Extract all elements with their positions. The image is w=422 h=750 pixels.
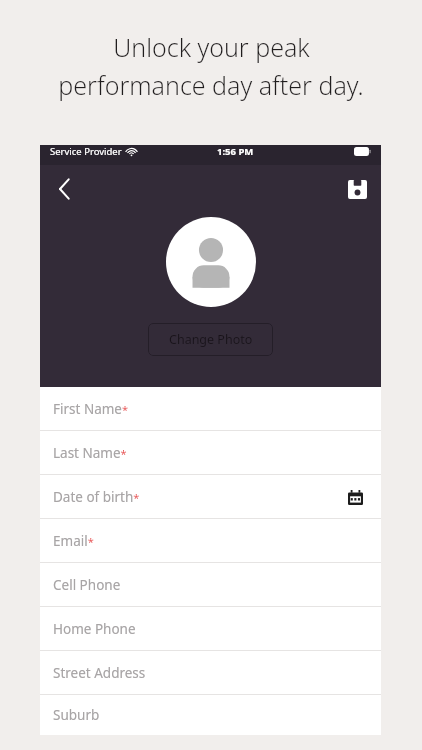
staticText: Street Address xyxy=(53,664,146,682)
button[interactable]: Change Photo xyxy=(148,323,273,356)
button[interactable]: Cell Phone xyxy=(40,563,381,606)
button[interactable]: Back xyxy=(40,165,88,213)
button[interactable]: Street Address xyxy=(40,651,381,694)
button[interactable]: Last Name* xyxy=(40,431,381,474)
button[interactable]: Pick date xyxy=(342,484,368,510)
staticText: Unlock your peak xyxy=(113,30,310,64)
staticText: First Name* xyxy=(53,400,129,418)
staticText: Home Phone xyxy=(53,620,136,638)
staticText: Service Provider xyxy=(50,145,122,158)
button[interactable]: Email* xyxy=(40,519,381,562)
button[interactable]: Date of birth* xyxy=(40,475,381,518)
staticText: Suburb xyxy=(53,706,100,724)
staticText: performance day after day. xyxy=(58,68,364,102)
staticText: Change Photo xyxy=(169,331,253,348)
button[interactable]: Home Phone xyxy=(40,607,381,650)
staticText: Last Name* xyxy=(53,444,127,462)
button[interactable]: First Name* xyxy=(40,387,381,430)
button[interactable]: Save xyxy=(333,165,381,213)
button[interactable]: Suburb xyxy=(40,695,381,735)
staticText: Date of birth* xyxy=(53,488,140,506)
staticText: 1:56 PM xyxy=(217,145,254,158)
staticText: Email* xyxy=(53,532,94,550)
staticText: Cell Phone xyxy=(53,576,121,594)
